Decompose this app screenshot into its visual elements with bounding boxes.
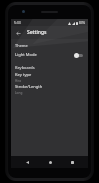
button[interactable]: Stroke/Length: [11, 83, 88, 95]
staticText: 5:33: [14, 20, 21, 25]
staticText: Stroke/Length: [15, 84, 43, 90]
button[interactable]: Back: [21, 156, 33, 168]
staticText: Long: [15, 91, 23, 95]
staticText: Key type: [15, 72, 32, 78]
button[interactable]: Key type: [11, 71, 88, 83]
staticText: Light Mode: [15, 52, 37, 58]
button[interactable]: Home: [44, 156, 56, 168]
staticText: Keyboards: [15, 65, 35, 70]
button[interactable]: Light Mode: [11, 49, 88, 61]
staticText: 83%: [79, 21, 86, 25]
staticText: Theme: [15, 43, 28, 48]
button[interactable]: Back: [13, 28, 23, 38]
staticText: Settings: [27, 29, 47, 36]
staticText: Hira: [15, 79, 22, 83]
button[interactable]: Recent apps: [66, 156, 78, 168]
